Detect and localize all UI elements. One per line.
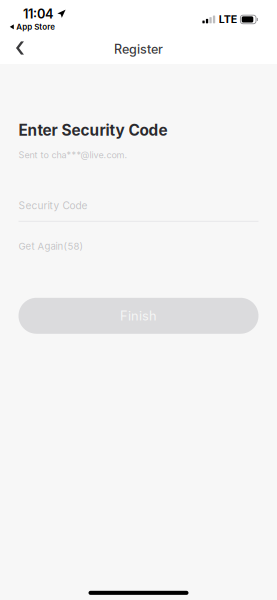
staticText: LTE (219, 13, 237, 26)
button[interactable]: Get Again(58) (18, 240, 83, 252)
staticText: Get Again(58) (18, 240, 83, 252)
staticText: App Store (16, 22, 55, 32)
staticText: Sent to cha***@live.com. (18, 150, 127, 161)
staticText: Security Code (18, 199, 87, 212)
button[interactable]: App Store (0, 0, 55, 32)
staticText: Finish (120, 308, 157, 323)
staticText: Enter Security Code (18, 121, 167, 140)
button[interactable]: Finish (18, 298, 258, 334)
staticText: 11:04 (23, 6, 54, 21)
button[interactable]: Back (0, 31, 38, 65)
staticText: Register (114, 42, 163, 57)
